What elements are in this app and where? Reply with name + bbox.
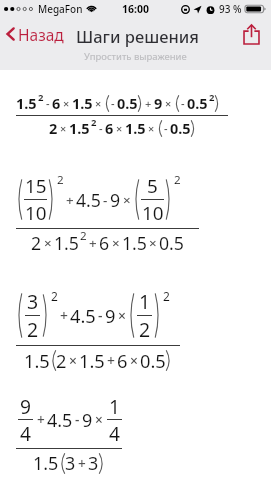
staticText: + (107, 351, 115, 370)
staticText: 9 (154, 93, 163, 113)
staticText: 1 (109, 393, 120, 419)
staticText: × (63, 96, 70, 111)
staticText: - (164, 121, 168, 136)
staticText: 2 (31, 231, 42, 255)
staticText: - (75, 410, 80, 429)
staticText: 2 (174, 172, 181, 188)
staticText: × (148, 121, 155, 136)
staticText: 2 (49, 118, 58, 138)
staticText: × (60, 121, 67, 136)
staticText: - (99, 121, 103, 136)
staticText: 1.5 (125, 118, 146, 138)
staticText: 9 (110, 188, 121, 212)
button[interactable]: Share (237, 20, 265, 48)
staticText: 10 (142, 200, 164, 226)
staticText: 6 (105, 118, 114, 138)
staticText: 9 (105, 303, 116, 328)
staticText: × (95, 410, 103, 429)
staticText: × (149, 234, 157, 252)
staticText: + (78, 454, 86, 473)
staticText: × (130, 351, 138, 370)
staticText: 1.5 (122, 231, 147, 255)
staticText: 3 (65, 451, 76, 475)
staticText: 0.5 (187, 93, 208, 113)
staticText: 4.5 (70, 303, 96, 328)
staticText: 5 (147, 173, 158, 199)
staticText: × (165, 96, 172, 111)
staticText: 0.5 (159, 231, 184, 255)
staticText: - (111, 96, 115, 111)
staticText: 2 (139, 316, 151, 343)
staticText: - (181, 96, 185, 111)
staticText: 10 (25, 200, 47, 226)
staticText: 2 (80, 228, 87, 244)
staticText: 93 % (219, 2, 242, 16)
staticText: 9 (20, 393, 31, 419)
staticText: 2 (56, 348, 67, 373)
staticText: 1.5 (24, 348, 50, 373)
staticText: 2 (57, 172, 64, 188)
staticText: 16:00 (122, 2, 149, 16)
staticText: 4.5 (47, 408, 73, 432)
staticText: × (69, 351, 77, 370)
staticText: + (66, 191, 74, 209)
staticText: 0.5 (140, 348, 166, 373)
staticText: - (46, 96, 50, 111)
staticText: 0.5 (117, 93, 138, 113)
staticText: × (118, 306, 126, 325)
staticText: 9 (82, 408, 93, 432)
staticText: + (60, 306, 68, 325)
staticText: × (44, 234, 52, 252)
staticText: 1.5 (79, 348, 105, 373)
staticText: 1 (139, 288, 151, 315)
staticText: 2 (91, 116, 97, 129)
staticText: 4 (20, 420, 31, 446)
staticText: + (89, 234, 97, 252)
staticText: 2 (51, 288, 58, 304)
staticText: 4 (109, 420, 120, 446)
staticText: 2 (163, 288, 170, 304)
staticText: 2 (27, 316, 39, 343)
staticText: 15 (25, 173, 47, 199)
staticText: 1.5 (69, 118, 90, 138)
staticText: × (123, 191, 131, 209)
staticText: 1.5 (72, 93, 93, 113)
staticText: 1.5 (16, 93, 37, 113)
staticText: 3 (88, 451, 99, 475)
staticText: × (95, 96, 102, 111)
staticText: × (112, 234, 120, 252)
staticText: Упростить выражение (84, 50, 187, 63)
staticText: Шаги решения (76, 25, 200, 47)
staticText: 6 (99, 231, 110, 255)
staticText: 6 (52, 93, 61, 113)
staticText: + (145, 96, 152, 111)
staticText: 2 (38, 91, 44, 104)
staticText: 3 (27, 288, 39, 315)
staticText: 4.5 (76, 188, 101, 212)
staticText: 1.5 (33, 451, 59, 475)
staticText: - (103, 191, 108, 209)
staticText: 2 (209, 91, 215, 104)
staticText: Назад (18, 24, 64, 45)
staticText: + (37, 410, 45, 429)
staticText: × (116, 121, 123, 136)
button[interactable]: Назад (2, 22, 68, 46)
staticText: MegaFon (38, 2, 83, 16)
staticText: 0.5 (170, 118, 191, 138)
staticText: - (98, 306, 103, 325)
staticText: 1.5 (54, 231, 79, 255)
staticText: 6 (117, 348, 128, 373)
